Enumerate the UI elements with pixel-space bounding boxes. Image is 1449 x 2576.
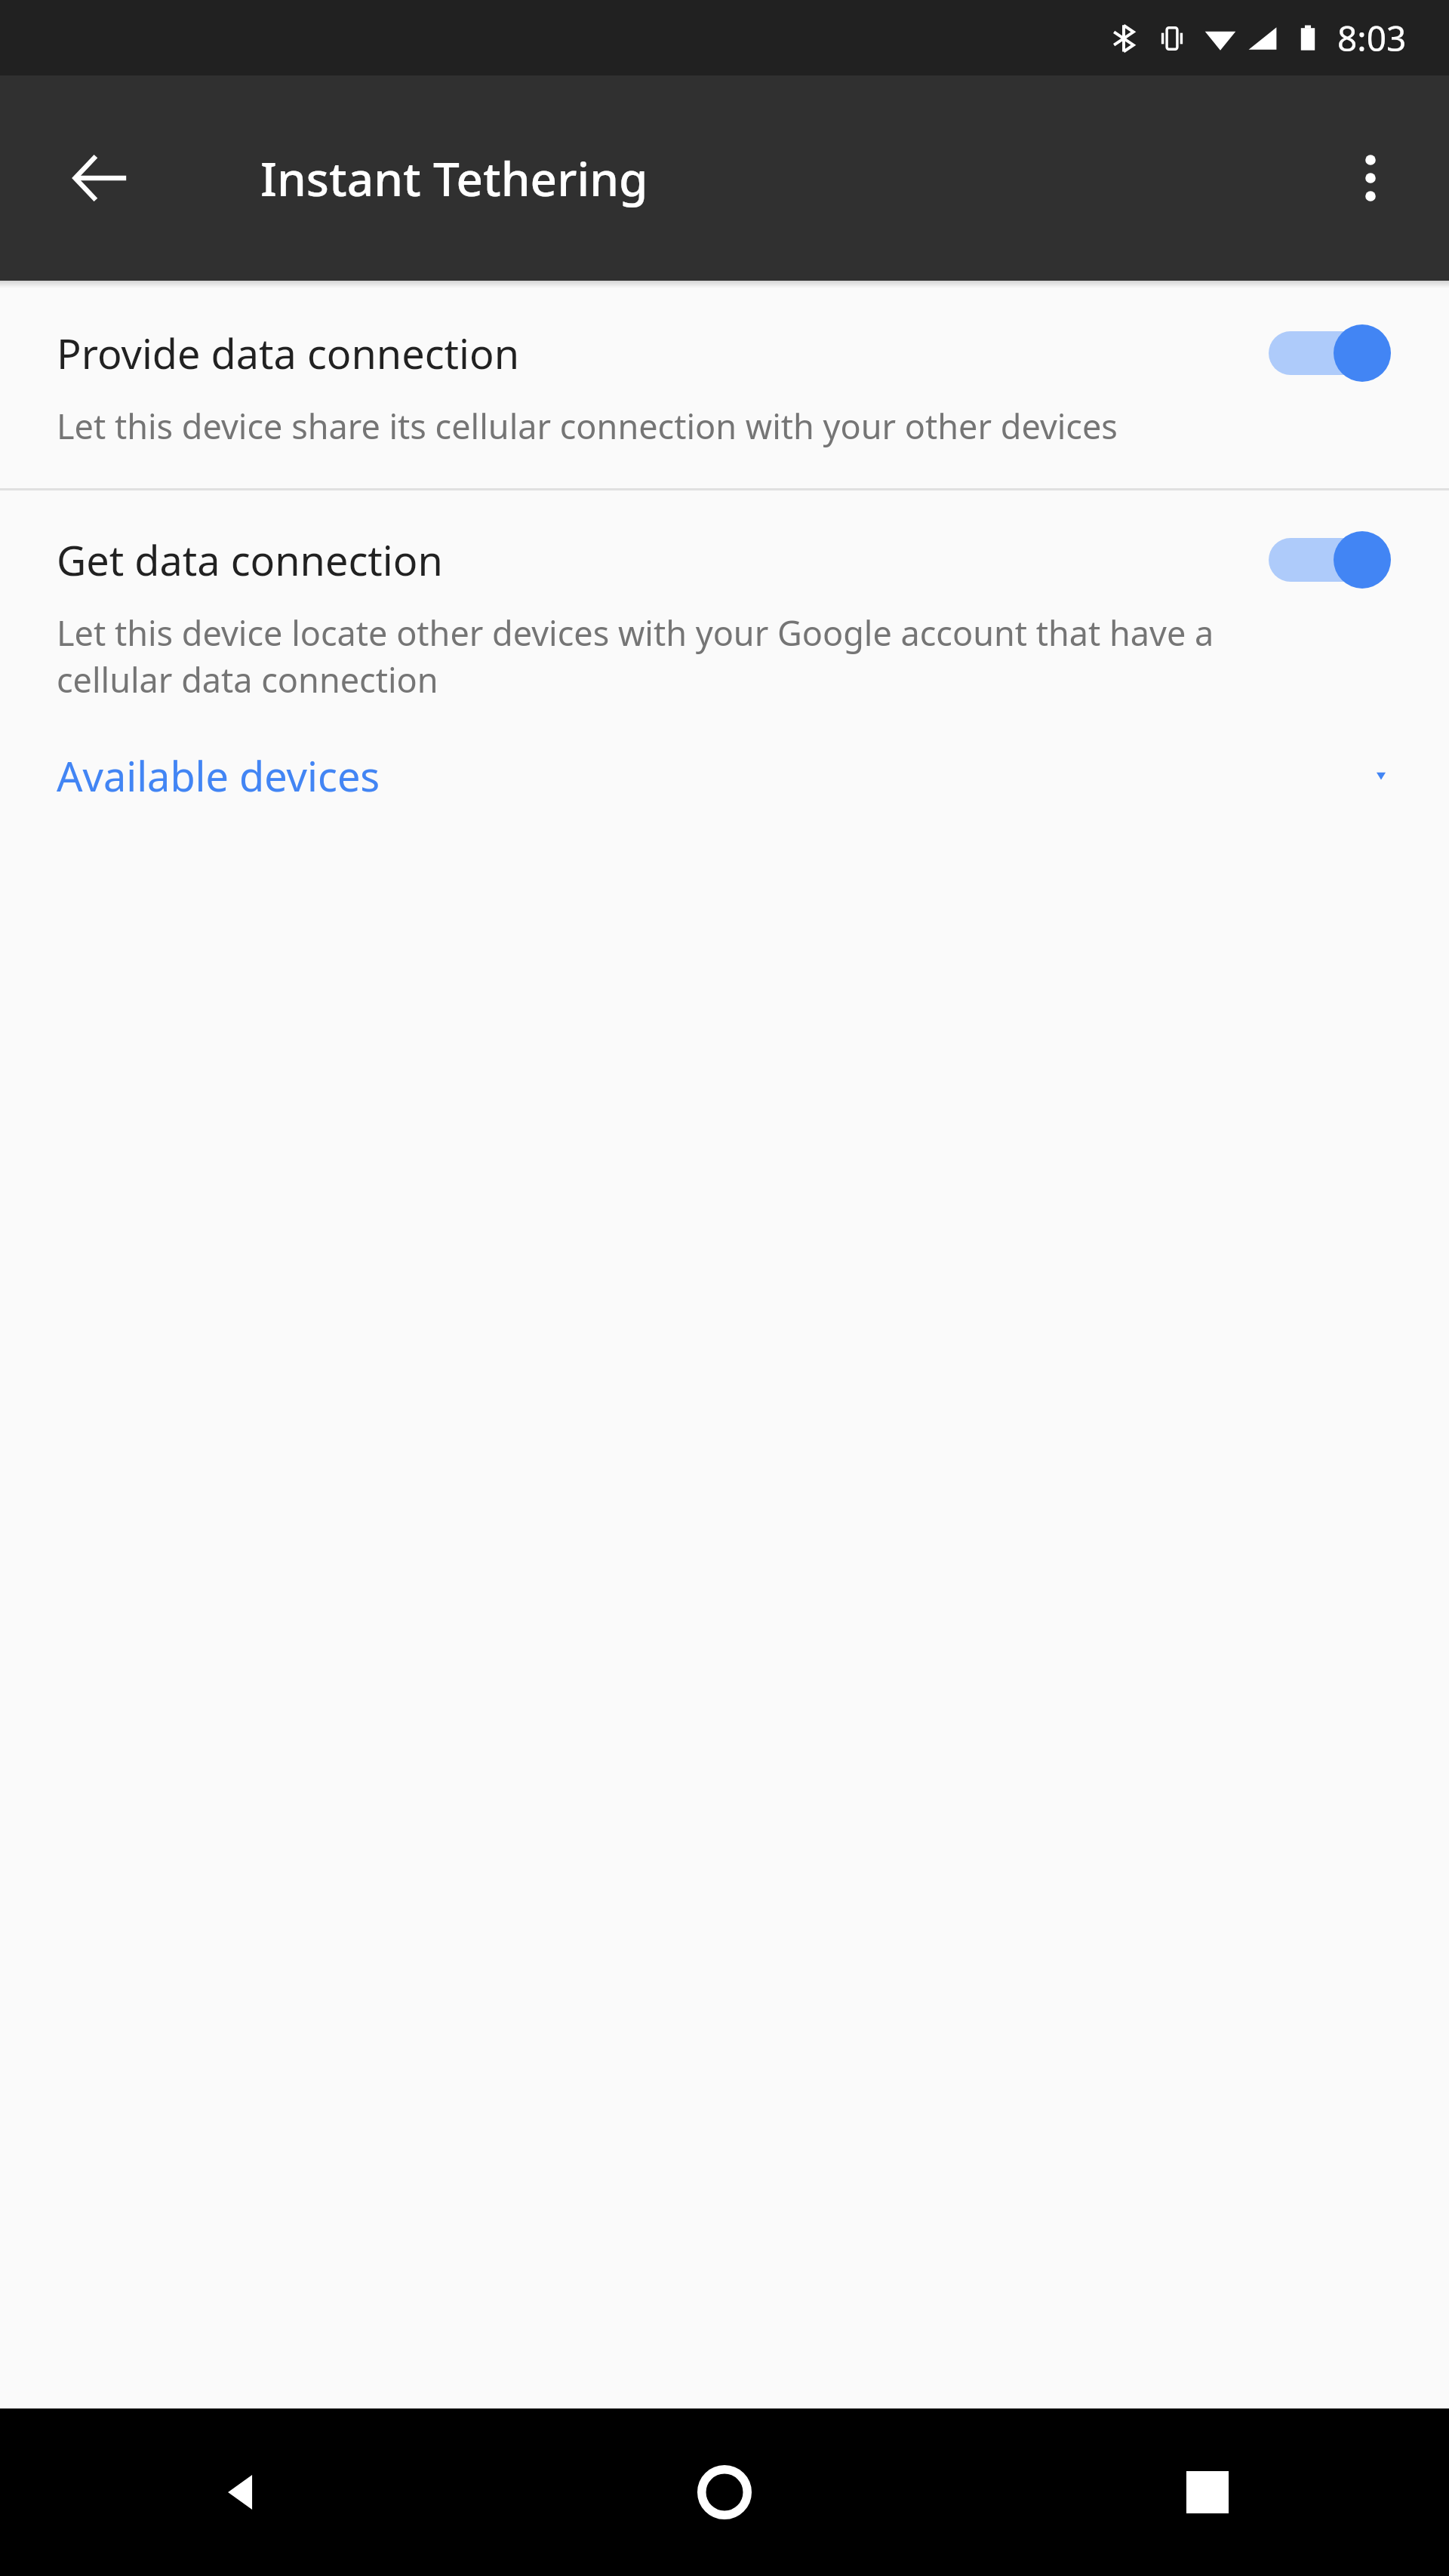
button[interactable]: Back — [0, 2408, 483, 2576]
staticText: Provide data connection — [57, 325, 1267, 381]
button[interactable]: Available devices — [0, 702, 1449, 826]
button[interactable]: Back — [28, 106, 173, 251]
staticText: Let this device locate other devices wit… — [57, 610, 1299, 702]
staticText: Get data connection — [57, 532, 1267, 588]
staticText: Available devices — [57, 748, 1370, 804]
button[interactable]: Get data connection — [0, 490, 1449, 702]
button[interactable]: More options — [1310, 118, 1431, 238]
button[interactable]: Home — [483, 2408, 966, 2576]
button[interactable]: Toggle — [1267, 530, 1392, 590]
button[interactable]: Recent apps — [966, 2408, 1449, 2576]
button[interactable]: Toggle — [1267, 323, 1392, 383]
button[interactable]: Provide data connection — [0, 288, 1449, 449]
staticText: Let this device share its cellular conne… — [57, 403, 1299, 449]
staticText: Instant Tethering — [260, 146, 648, 210]
staticText: 8:03 — [1337, 14, 1407, 62]
